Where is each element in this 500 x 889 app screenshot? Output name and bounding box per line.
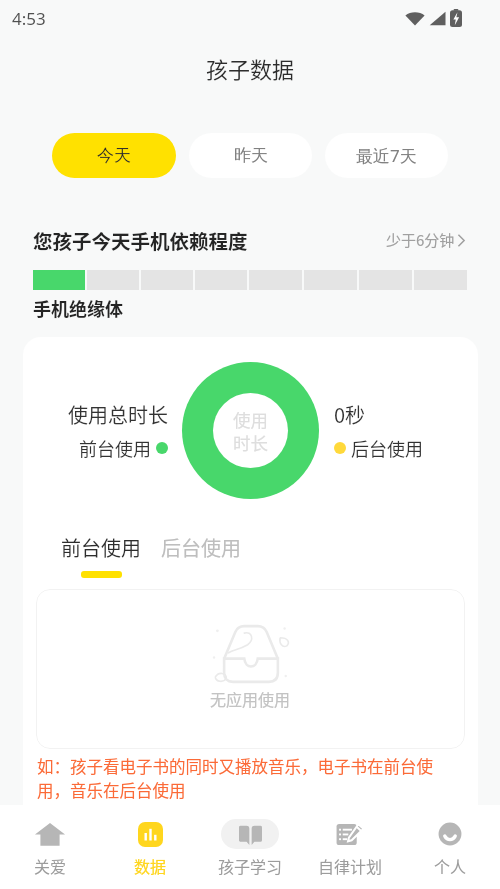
staticText: 手机绝缘体 — [33, 295, 123, 321]
button[interactable]: 个人 — [400, 805, 500, 889]
staticText: 使用总时长 — [68, 400, 168, 429]
staticText: 0秒 — [334, 400, 366, 429]
button[interactable]: 后台使用 — [161, 533, 241, 562]
staticText: 后台使用 — [161, 533, 241, 562]
staticText: 最近7天 — [356, 144, 417, 167]
staticText: 个人 — [434, 854, 467, 877]
staticText: 后台使用 — [351, 435, 423, 461]
staticText: 少于6分钟 — [386, 229, 455, 251]
staticText: 自律计划 — [318, 854, 383, 877]
staticText: 孩子学习 — [218, 854, 283, 877]
staticText: 如：孩子看电子书的同时又播放音乐，电子书在前台使用，音乐在后台使用 — [37, 754, 454, 802]
button[interactable]: 昨天 — [189, 133, 312, 178]
button[interactable]: 数据 — [100, 805, 200, 889]
staticText: 今天 — [97, 145, 131, 166]
staticText: 使用 时长 — [233, 407, 268, 455]
button[interactable]: 少于6分钟 — [386, 229, 467, 251]
button[interactable]: 自律计划 — [300, 805, 400, 889]
staticText: 关爱 — [34, 854, 67, 877]
staticText: 数据 — [134, 854, 167, 877]
staticText: 孩子数据 — [206, 52, 295, 84]
staticText: 昨天 — [234, 145, 268, 166]
button[interactable]: 前台使用 — [61, 533, 141, 578]
button[interactable]: 孩子学习 — [200, 805, 300, 889]
button[interactable]: 今天 — [52, 133, 176, 178]
button[interactable]: 最近7天 — [325, 133, 448, 178]
button[interactable]: 关爱 — [0, 805, 100, 889]
staticText: 前台使用 — [79, 435, 151, 461]
staticText: 4:53 — [12, 7, 46, 30]
staticText: 您孩子今天手机依赖程度 — [33, 226, 248, 254]
staticText: 无应用使用 — [210, 687, 291, 710]
staticText: 前台使用 — [61, 533, 141, 562]
